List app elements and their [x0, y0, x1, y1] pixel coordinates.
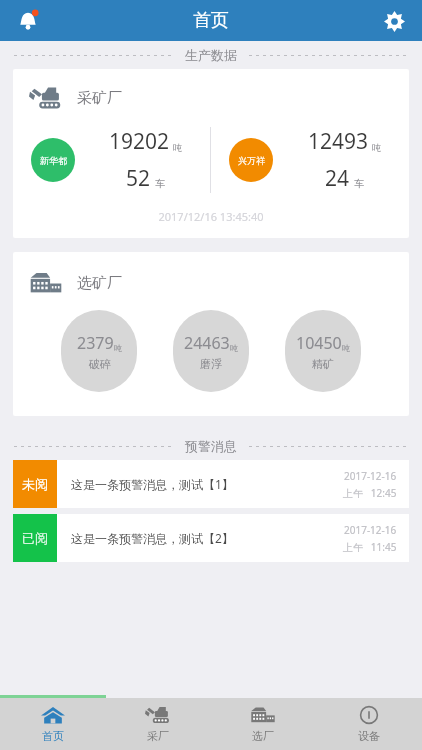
staticText: 精矿	[312, 357, 334, 371]
button[interactable]: 已阅	[13, 514, 409, 562]
staticText: 2017/12/16 13:45:40	[13, 209, 409, 224]
button[interactable]: 24463	[173, 310, 249, 392]
staticText: 24463	[184, 332, 230, 354]
staticText: 兴万祥	[238, 155, 265, 166]
staticText: 10450	[296, 332, 342, 354]
staticText: 选矿厂	[77, 274, 122, 293]
button[interactable]: 采厂	[105, 698, 210, 750]
staticText: 破碎	[89, 357, 111, 371]
staticText: 24	[325, 164, 350, 193]
staticText: 2017-12-16	[344, 523, 397, 537]
button[interactable]: 2379	[61, 310, 137, 392]
staticText: 上午 11:45	[343, 540, 397, 554]
button[interactable]: 选矿厂	[13, 252, 409, 416]
button[interactable]: 10450	[285, 310, 361, 392]
staticText: 吨	[342, 343, 350, 353]
staticText: 12493	[308, 127, 369, 156]
staticText: 52	[126, 164, 151, 193]
button[interactable]: Notifications	[8, 1, 48, 41]
staticText: 预警消息	[185, 438, 237, 454]
staticText: 车	[354, 177, 364, 190]
button[interactable]: 选厂	[210, 698, 316, 750]
staticText: 首页	[193, 9, 229, 32]
staticText: 首页	[42, 729, 64, 743]
staticText: 设备	[358, 729, 380, 743]
staticText: 生产数据	[185, 47, 237, 63]
button[interactable]: 采矿厂	[13, 69, 409, 238]
staticText: 采矿厂	[77, 89, 122, 108]
staticText: 磨浮	[200, 357, 222, 371]
staticText: 新华都	[40, 155, 67, 166]
staticText: 选厂	[252, 729, 274, 743]
staticText: 已阅	[22, 530, 48, 546]
staticText: 这是一条预警消息，测试【2】	[71, 530, 343, 546]
staticText: 上午 12:45	[343, 486, 397, 500]
staticText: 吨	[230, 343, 238, 353]
button[interactable]: 首页	[0, 698, 105, 750]
staticText: 19202	[109, 127, 170, 156]
staticText: 采厂	[147, 729, 169, 743]
staticText: 车	[155, 177, 165, 190]
staticText: 吨	[173, 142, 182, 153]
staticText: 2379	[77, 332, 114, 354]
staticText: 2017-12-16	[344, 469, 397, 483]
button[interactable]: Settings	[374, 1, 414, 41]
button[interactable]: 未阅	[13, 460, 409, 508]
staticText: 这是一条预警消息，测试【1】	[71, 476, 343, 492]
staticText: 吨	[114, 343, 122, 353]
staticText: 吨	[372, 142, 381, 153]
button[interactable]: 设备	[316, 698, 422, 750]
staticText: 未阅	[22, 476, 48, 492]
